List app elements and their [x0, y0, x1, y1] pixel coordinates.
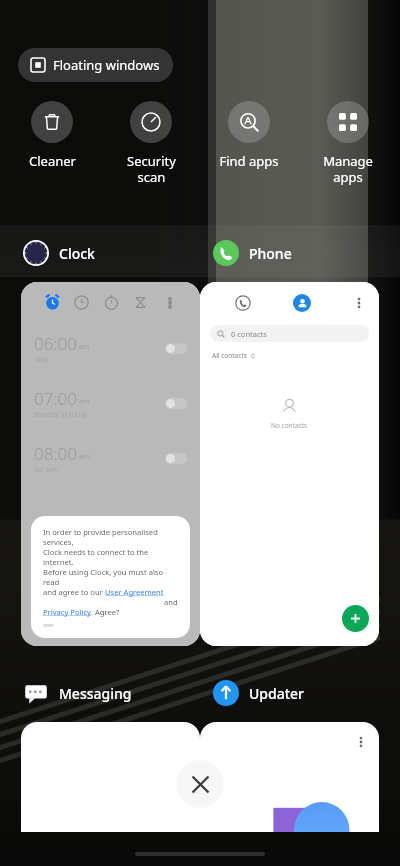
staticText: and agree to our	[43, 587, 105, 597]
button[interactable]: Timer tab	[103, 294, 120, 311]
staticText: am	[79, 397, 90, 407]
button[interactable]	[165, 343, 187, 354]
button[interactable]	[43, 624, 54, 627]
button[interactable]: More options	[351, 295, 367, 311]
button[interactable]: Floating windows	[18, 48, 173, 82]
button[interactable]: Phone	[212, 237, 292, 269]
staticText: am	[79, 342, 90, 352]
staticText: 07:00	[34, 387, 77, 410]
staticText: Manage apps	[323, 152, 373, 185]
staticText: Clock	[59, 244, 95, 263]
staticText: 08:00	[34, 442, 77, 465]
staticText: Clock needs to connect to the internet.	[43, 547, 178, 567]
button[interactable]: Privacy Policy	[43, 607, 91, 617]
button[interactable]: Cleaner	[6, 99, 98, 172]
button[interactable]: Alarm tab	[44, 294, 61, 311]
staticText: 0 contacts	[231, 329, 267, 339]
staticText: Set Sun.	[34, 465, 59, 474]
staticText: Security scan	[127, 152, 176, 185]
staticText: Phone	[249, 244, 292, 263]
button[interactable]: Messaging	[22, 677, 132, 709]
staticText: Messaging	[59, 684, 132, 703]
staticText: 06:00	[34, 332, 77, 355]
button[interactable]: Add contact	[342, 605, 369, 632]
button[interactable]: User Agreement	[105, 587, 164, 597]
button[interactable]: Stopwatch tab	[132, 294, 149, 311]
staticText: All contacts	[212, 351, 247, 360]
staticText: Before using Clock, you must also read	[43, 567, 178, 587]
staticText: Only	[34, 355, 49, 364]
staticText: Monday to Friday	[34, 410, 88, 419]
staticText: Updater	[249, 684, 305, 703]
button[interactable]	[165, 398, 187, 409]
button[interactable]: More options	[353, 734, 369, 750]
button[interactable]: More options	[200, 722, 379, 832]
staticText: In order to provide personalised service…	[43, 527, 178, 547]
button[interactable]: Security scan	[105, 99, 197, 187]
staticText: No contacts	[271, 421, 308, 430]
button[interactable]: Alarm tab	[21, 282, 200, 646]
button[interactable]: Dialer	[234, 294, 252, 312]
button[interactable]: Updater	[212, 677, 305, 709]
button[interactable]	[21, 722, 200, 832]
staticText: Find apps	[219, 152, 279, 170]
button[interactable]: Manage apps	[302, 99, 394, 187]
staticText: . Agree?	[91, 607, 120, 617]
staticText: and	[164, 587, 178, 607]
button[interactable]: Find apps	[203, 99, 295, 172]
staticText: Cleaner	[29, 152, 76, 170]
button[interactable]: Clock tab	[73, 294, 90, 311]
button[interactable]: 0 contacts	[210, 325, 369, 342]
button[interactable]: Contacts	[293, 294, 311, 312]
button[interactable]: More options	[162, 295, 178, 311]
button[interactable]	[165, 453, 187, 464]
staticText: am	[79, 452, 90, 462]
staticText: Floating windows	[53, 56, 160, 74]
button[interactable]: Close all	[176, 760, 224, 808]
button[interactable]: Dialer	[200, 282, 379, 646]
button[interactable]: Clock	[22, 237, 95, 269]
button[interactable]: All contacts	[212, 351, 256, 360]
